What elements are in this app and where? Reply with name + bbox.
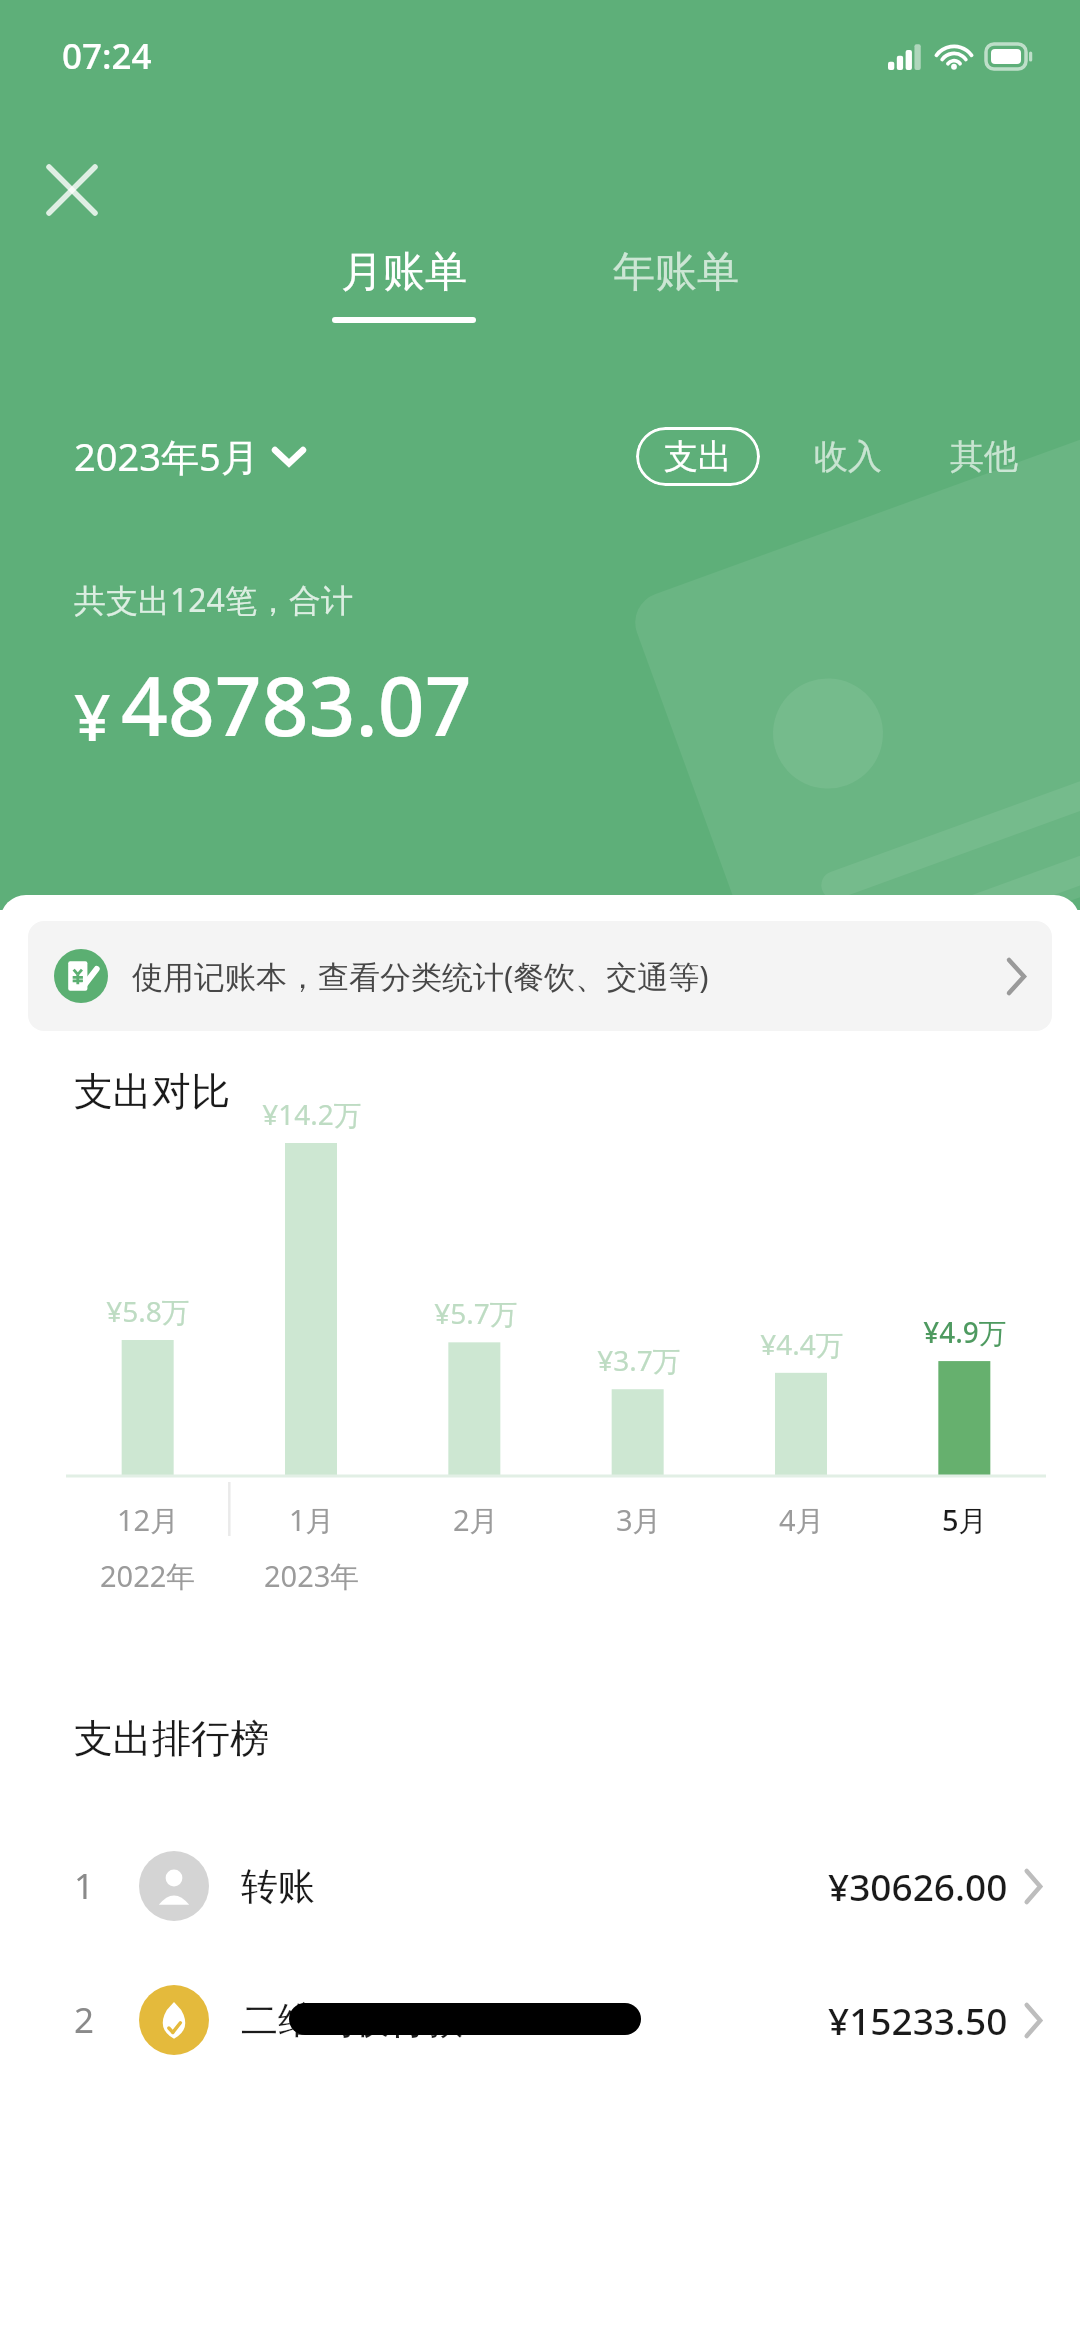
staticText: 支出排行榜 — [74, 1714, 269, 1763]
staticText: 2022年 — [100, 1556, 196, 1596]
staticText: 07:24 — [62, 32, 152, 80]
staticText: ¥5.7万 — [434, 1294, 518, 1332]
button[interactable]: 支出 — [636, 427, 760, 486]
staticText: 5月 — [942, 1500, 988, 1540]
staticText: ¥15233.50 — [828, 1995, 1008, 2045]
staticText: 4月 — [779, 1500, 825, 1540]
staticText: 支出 — [664, 435, 732, 478]
staticText: 其他 — [950, 435, 1018, 478]
staticText: ¥3.7万 — [597, 1341, 681, 1379]
staticText: ¥5.8万 — [106, 1292, 190, 1330]
staticText: 2023年5月 — [74, 430, 259, 482]
button[interactable]: 2023年5月 — [74, 422, 303, 490]
staticText: 3月 — [616, 1500, 662, 1540]
button[interactable]: 月账单 — [322, 242, 486, 327]
button[interactable]: Close — [28, 146, 116, 234]
staticText: 转账 — [241, 1863, 315, 1910]
button[interactable]: 收入 — [808, 425, 888, 488]
staticText: 年账单 — [613, 246, 739, 299]
staticText: 使用记账本，查看分类统计(餐饮、交通等) — [132, 955, 709, 997]
staticText: 12月 — [117, 1500, 180, 1540]
button[interactable]: 1 — [0, 1819, 1080, 1953]
staticText: ¥4.4万 — [760, 1325, 844, 1363]
staticText: 收入 — [814, 435, 882, 478]
button[interactable]: 使用记账本，查看分类统计(餐饮、交通等) — [28, 921, 1052, 1031]
staticText: ¥ — [74, 673, 111, 760]
button[interactable]: 其他 — [944, 425, 1024, 488]
staticText: 1月 — [289, 1500, 335, 1540]
staticText: 2023年 — [264, 1556, 360, 1596]
staticText: 支出对比 — [74, 1067, 230, 1116]
staticText: ¥14.2万 — [262, 1095, 362, 1133]
staticText: 2 — [74, 1996, 95, 2044]
staticText: ¥4.9万 — [923, 1313, 1007, 1351]
staticText: 月账单 — [341, 246, 467, 299]
staticText: 二维码收付款 — [241, 1997, 463, 2044]
staticText: 2月 — [453, 1500, 499, 1540]
button[interactable]: 年账单 — [594, 242, 758, 327]
staticText: 1 — [74, 1862, 95, 1910]
button[interactable]: 2 — [0, 1953, 1080, 2087]
staticText: 48783.07 — [121, 648, 472, 760]
staticText: ¥30626.00 — [828, 1861, 1008, 1911]
staticText: 共支出124笔，合计 — [74, 578, 353, 622]
